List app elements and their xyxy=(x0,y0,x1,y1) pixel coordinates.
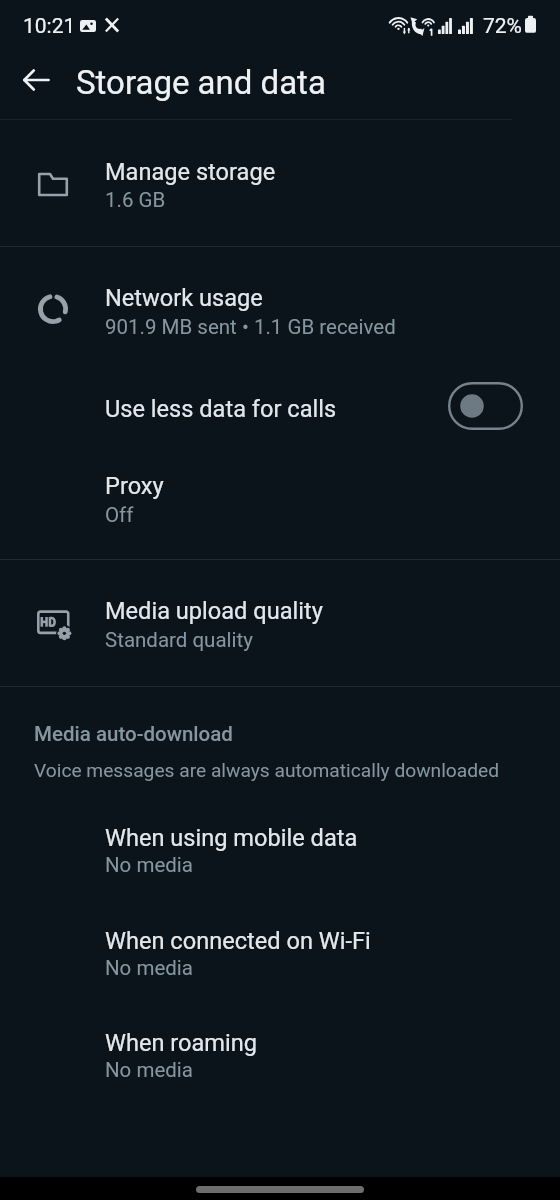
staticText: Standard quality xyxy=(105,628,253,652)
button[interactable]: Use less data for calls, off xyxy=(447,381,524,431)
staticText: 901.9 MB sent • 1.1 GB received xyxy=(105,315,396,339)
staticText: 72% xyxy=(483,14,522,39)
button[interactable]: Network usage xyxy=(0,247,560,374)
staticText: 1.6 GB xyxy=(105,188,166,212)
staticText: Media auto-download xyxy=(34,722,233,746)
staticText: When using mobile data xyxy=(105,824,358,852)
staticText: Storage and data xyxy=(76,63,326,102)
staticText: When roaming xyxy=(105,1029,258,1057)
button[interactable]: Back xyxy=(10,54,62,106)
staticText: Off xyxy=(105,503,134,527)
button[interactable]: Manage storage xyxy=(0,120,560,246)
button[interactable]: When roaming xyxy=(0,999,560,1102)
staticText: No media xyxy=(105,956,193,980)
staticText: Use less data for calls xyxy=(105,395,337,423)
staticText: When connected on Wi-Fi xyxy=(105,927,371,955)
button[interactable]: Media upload quality xyxy=(0,560,560,686)
staticText: 10:21 xyxy=(23,14,76,39)
staticText: No media xyxy=(105,853,193,877)
staticText: Network usage xyxy=(105,284,263,312)
button[interactable]: Use less data for calls xyxy=(0,374,560,458)
staticText: Voice messages are always automatically … xyxy=(34,759,500,782)
staticText: Proxy xyxy=(105,472,164,500)
button[interactable]: Proxy xyxy=(0,458,560,559)
staticText: Manage storage xyxy=(105,158,276,186)
button[interactable]: When connected on Wi-Fi xyxy=(0,896,560,999)
staticText: Media upload quality xyxy=(105,597,323,625)
staticText: No media xyxy=(105,1058,193,1082)
button[interactable]: When using mobile data xyxy=(0,794,560,896)
